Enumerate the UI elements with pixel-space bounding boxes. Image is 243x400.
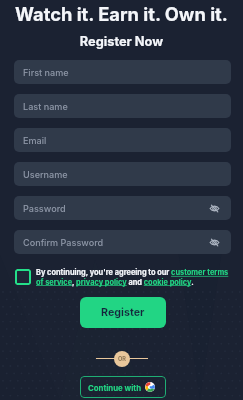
staticText: Confirm Password	[23, 237, 104, 248]
button[interactable]: Email	[14, 128, 231, 152]
button[interactable]: Username	[14, 162, 231, 186]
button[interactable]: Confirm Password	[14, 230, 231, 254]
button[interactable]: Show password	[208, 236, 221, 249]
staticText: Email	[23, 135, 47, 146]
button[interactable]: Register	[80, 297, 166, 328]
staticText: First name	[23, 67, 69, 78]
staticText: Register Now	[0, 34, 243, 49]
button[interactable]: Last name	[14, 94, 231, 118]
staticText: OR	[118, 356, 126, 363]
button[interactable]: Agree to terms	[15, 269, 31, 285]
staticText: Register	[101, 306, 145, 319]
staticText: Watch it. Earn it. Own it.	[0, 3, 243, 25]
button[interactable]: Show password	[208, 202, 221, 215]
staticText: Continue with	[88, 383, 142, 392]
staticText: Username	[23, 169, 68, 180]
button[interactable]: Password	[14, 196, 231, 220]
button[interactable]: First name	[14, 60, 231, 84]
button[interactable]: Continue with	[80, 376, 166, 398]
staticText: Last name	[23, 101, 68, 112]
staticText: By continuing, you're agreeing to our cu…	[36, 268, 234, 286]
staticText: Password	[23, 203, 66, 214]
